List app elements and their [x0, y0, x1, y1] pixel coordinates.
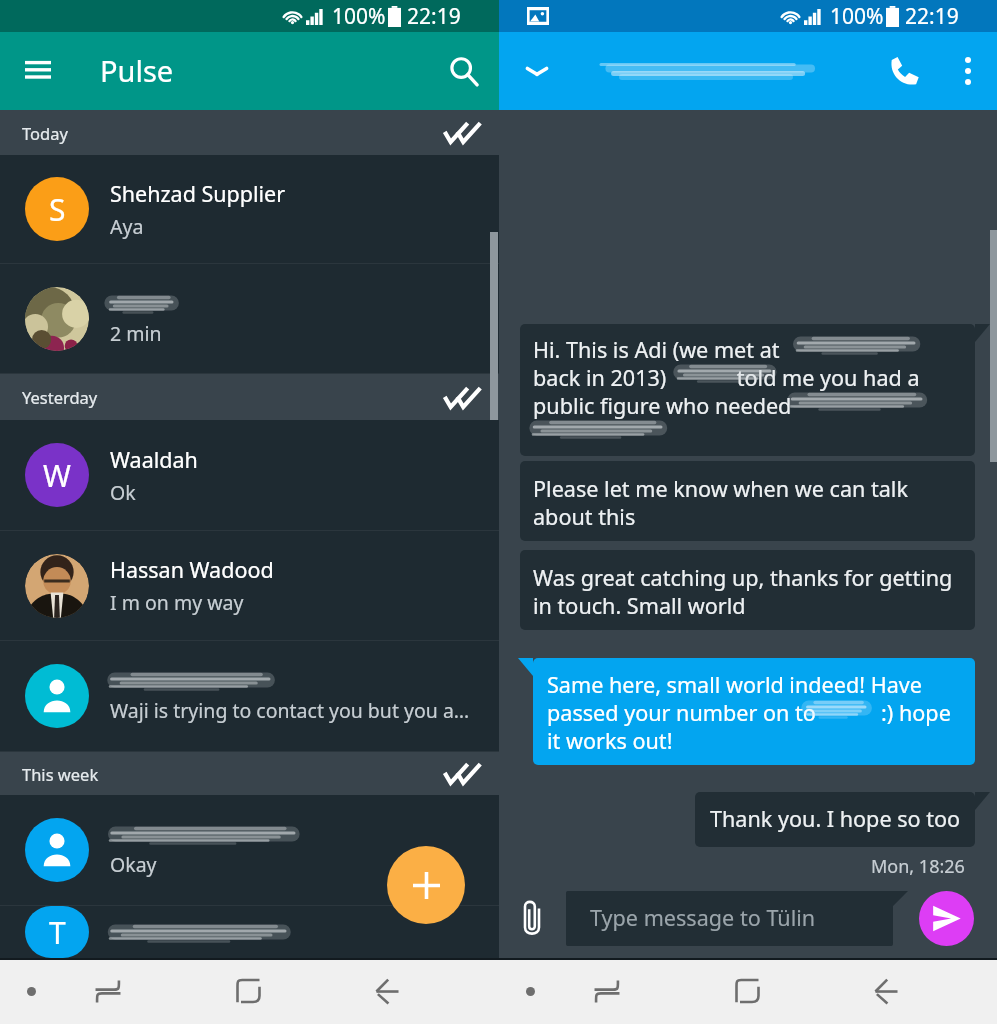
- staticText: 22:19: [905, 2, 959, 31]
- button[interactable]: Okay: [0, 795, 499, 905]
- staticText: 100%: [830, 2, 884, 31]
- button[interactable]: Yesterday: [0, 374, 499, 420]
- button[interactable]: Menu: [7, 967, 55, 1015]
- staticText: Please let me know when we can talk: [533, 474, 908, 502]
- staticText: Was great catching up, thanks for gettin…: [533, 563, 953, 591]
- button[interactable]: New conversation: [387, 846, 465, 924]
- staticText: Waji is trying to contact you but you ar…: [110, 697, 475, 724]
- button[interactable]: Hi. This is Adi (we met at: [520, 324, 975, 456]
- staticText: Hassan Wadood: [110, 555, 274, 584]
- staticText: [533, 419, 641, 447]
- button[interactable]: Search: [427, 35, 499, 107]
- staticText: Ok: [110, 479, 136, 506]
- staticText: back in 2013) told me you had a: [533, 363, 920, 391]
- button[interactable]: 2 min: [0, 264, 499, 373]
- button[interactable]: Today: [0, 110, 499, 155]
- staticText: I m on my way: [110, 589, 244, 616]
- button[interactable]: Recents: [84, 967, 132, 1015]
- button[interactable]: Call: [869, 36, 939, 106]
- staticText: 2 min: [110, 320, 162, 347]
- staticText: it works out!: [547, 726, 673, 754]
- staticText: Okay: [110, 851, 157, 878]
- button[interactable]: Waji is trying to contact you but you ar…: [0, 641, 499, 751]
- staticText: Aya: [110, 213, 144, 240]
- button[interactable]: T: [0, 906, 499, 958]
- button[interactable]: Same here, small world indeed! Have: [533, 658, 975, 765]
- staticText: T: [49, 912, 66, 953]
- staticText: 22:19: [407, 2, 461, 31]
- button[interactable]: This week: [0, 752, 499, 795]
- button[interactable]: Please let me know when we can talk: [520, 461, 975, 541]
- staticText: Pulse: [100, 51, 174, 90]
- button[interactable]: Type message to Tülin: [566, 891, 908, 946]
- button[interactable]: Attach: [508, 894, 555, 941]
- staticText: about this: [533, 502, 636, 530]
- button[interactable]: Send: [919, 891, 974, 946]
- button[interactable]: Menu: [506, 967, 554, 1015]
- staticText: Same here, small world indeed! Have: [547, 670, 922, 698]
- staticText: Today: [22, 122, 68, 144]
- button[interactable]: Recents: [583, 967, 631, 1015]
- staticText: Yesterday: [22, 386, 98, 408]
- button[interactable]: Collapse: [499, 33, 575, 109]
- staticText: in touch. Small world: [533, 591, 746, 619]
- staticText: public figure who needed: [533, 391, 884, 419]
- button[interactable]: Menu: [0, 33, 76, 109]
- staticText: Shehzad Supplier: [110, 179, 286, 208]
- button[interactable]: Back: [363, 967, 411, 1015]
- button[interactable]: Home: [723, 967, 771, 1015]
- button[interactable]: Hassan Wadood: [0, 531, 499, 640]
- button[interactable]: More options: [939, 42, 997, 100]
- staticText: This week: [22, 763, 99, 785]
- button[interactable]: W: [0, 420, 499, 530]
- button[interactable]: Home: [224, 967, 272, 1015]
- staticText: Thank you. I hope so too: [710, 804, 961, 833]
- staticText: Waaldah: [110, 445, 198, 474]
- button[interactable]: Was great catching up, thanks for gettin…: [520, 550, 975, 630]
- staticText: Type message to Tülin: [590, 903, 816, 932]
- staticText: W: [43, 455, 71, 496]
- button[interactable]: Back: [862, 967, 910, 1015]
- staticText: 100%: [332, 2, 386, 31]
- button[interactable]: S: [0, 155, 499, 263]
- button[interactable]: Thank you. I hope so too: [695, 792, 975, 847]
- staticText: Hi. This is Adi (we met at: [533, 335, 872, 363]
- staticText: S: [49, 189, 66, 230]
- staticText: Mon, 18:26: [871, 854, 965, 879]
- staticText: passed your number on to :) hope: [547, 698, 951, 726]
